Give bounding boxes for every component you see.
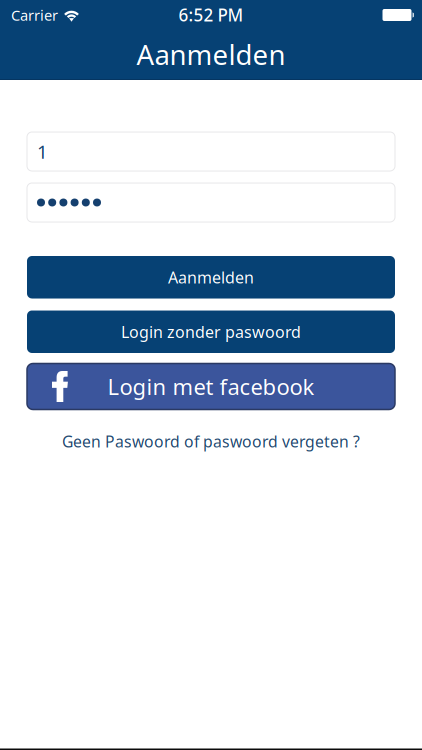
staticText: Aanmelden (136, 35, 285, 73)
staticText: Aanmelden (168, 266, 254, 288)
staticText: Login zonder paswoord (121, 321, 301, 343)
staticText: 6:52 PM (178, 3, 243, 27)
button[interactable]: Aanmelden (27, 256, 395, 298)
staticText: Login met facebook (107, 371, 314, 401)
button[interactable]: Geen Paswoord of paswoord vergeten ? (27, 431, 395, 451)
button[interactable]: Login met facebook (27, 363, 395, 409)
button[interactable]: Login zonder paswoord (27, 310, 395, 353)
staticText: Geen Paswoord of paswoord vergeten ? (62, 431, 360, 452)
staticText: 1 (37, 139, 48, 164)
staticText: Carrier (11, 5, 58, 25)
